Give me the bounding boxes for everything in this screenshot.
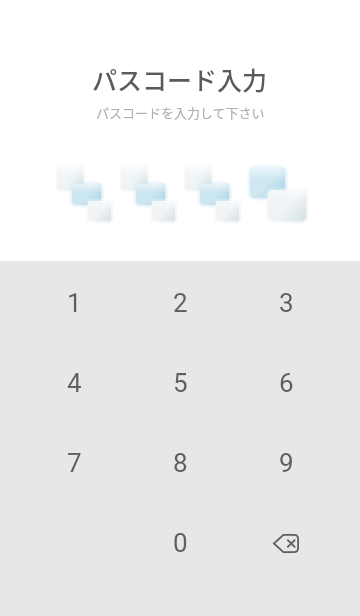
other: Delete (273, 534, 299, 553)
staticText: 7 (67, 448, 82, 478)
staticText: 2 (173, 288, 188, 318)
button[interactable]: 4 (21, 343, 127, 423)
staticText: 5 (173, 368, 188, 398)
button[interactable]: 8 (127, 423, 233, 503)
staticText: 3 (279, 288, 294, 318)
staticText: 1 (67, 288, 82, 318)
staticText: パスコード入力 (92, 61, 268, 97)
button[interactable]: 9 (233, 423, 339, 503)
staticText: 8 (173, 448, 188, 478)
staticText: 9 (279, 448, 294, 478)
button[interactable]: 1 (21, 263, 127, 343)
button[interactable]: 7 (21, 423, 127, 503)
button[interactable]: 0 (127, 503, 233, 583)
button[interactable]: 2 (127, 263, 233, 343)
staticText: 0 (173, 528, 188, 558)
button[interactable]: 6 (233, 343, 339, 423)
button[interactable]: Delete (233, 503, 339, 583)
staticText: 6 (279, 368, 294, 398)
staticText: 4 (67, 368, 82, 398)
button[interactable]: 5 (127, 343, 233, 423)
button[interactable]: 3 (233, 263, 339, 343)
staticText: パスコードを入力して下さい (96, 103, 265, 122)
